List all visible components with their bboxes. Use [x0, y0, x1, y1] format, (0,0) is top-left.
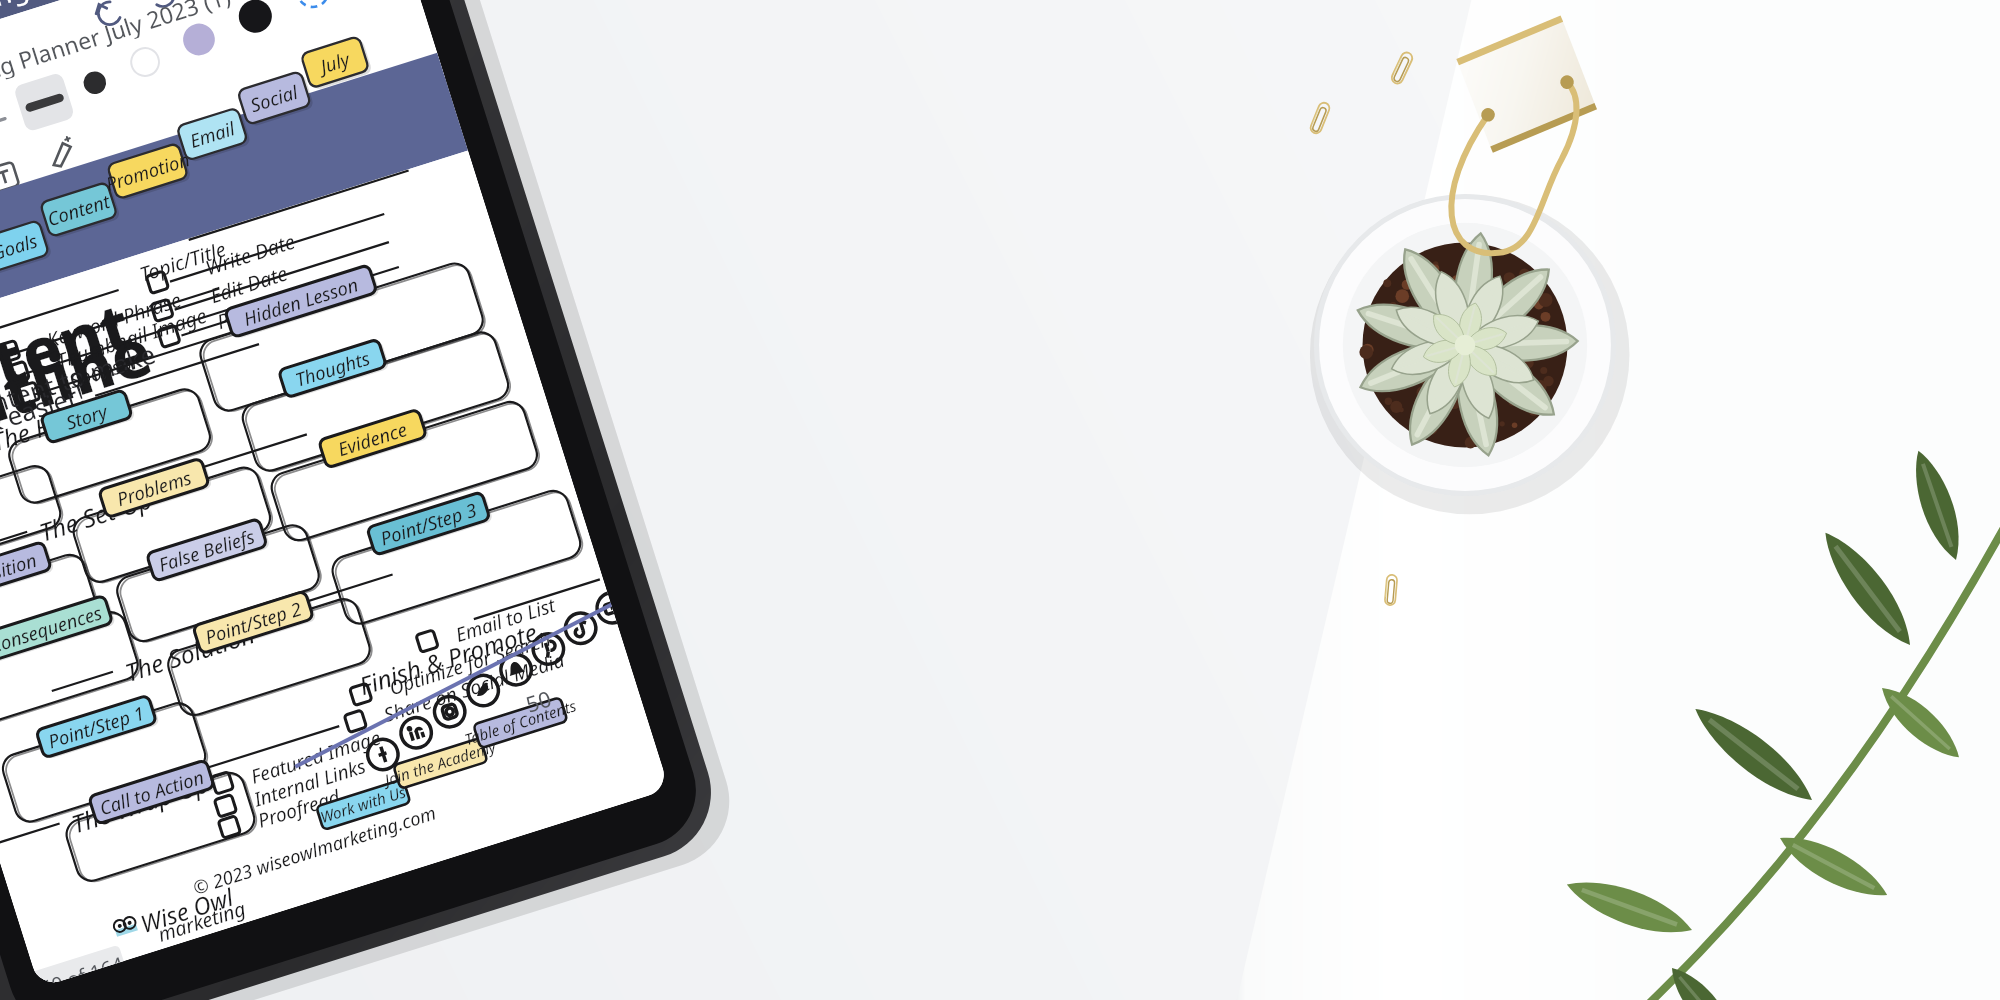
button[interactable]: Join the Academy	[319, 620, 377, 650]
button[interactable]: Offers	[45, 190, 85, 215]
button[interactable]: Email	[199, 145, 239, 170]
button[interactable]: Close document	[281, 54, 303, 76]
button[interactable]: Table of Contents	[375, 599, 437, 631]
button[interactable]: Promotion	[159, 159, 199, 184]
button[interactable]: Social	[237, 134, 277, 159]
button[interactable]: Add page	[262, 60, 284, 82]
button[interactable]: Redo	[224, 72, 246, 94]
button[interactable]: Goals	[85, 181, 125, 206]
button[interactable]: Meet Client	[5, 201, 45, 226]
button[interactable]: Bookmark	[244, 64, 266, 86]
button[interactable]: Content	[123, 171, 163, 196]
